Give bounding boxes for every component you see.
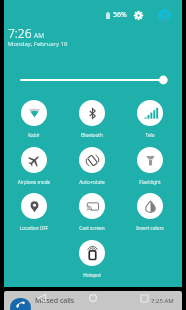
staticText: Telo (122, 132, 178, 138)
button[interactable]: Invert colors (122, 193, 178, 231)
staticText: Monday, February 16 (8, 40, 68, 48)
staticText: Airplane mode (6, 179, 62, 185)
staticText: 7:25 AM (151, 297, 174, 305)
button[interactable]: Home (85, 291, 101, 306)
button[interactable]: Kabir (6, 100, 62, 138)
button[interactable]: Location OFF (6, 193, 62, 231)
staticText: 56% (113, 10, 127, 20)
button[interactable]: Auto-rotate (64, 147, 120, 185)
button[interactable]: Flashlight (122, 147, 178, 185)
button[interactable]: Settings (133, 10, 144, 21)
button[interactable]: Back (34, 291, 50, 306)
staticText: 7:26 (8, 25, 32, 41)
staticText: AM (34, 31, 45, 40)
staticText: Cast screen (64, 225, 120, 231)
staticText: Hotspot (64, 272, 120, 278)
staticText: Location OFF (6, 225, 62, 231)
button[interactable]: Airplane mode (6, 147, 62, 185)
staticText: Missed calls (35, 296, 75, 306)
staticText: Auto-rotate (64, 179, 120, 185)
staticText: Invert colors (122, 225, 178, 231)
staticText: Bluetooth (64, 132, 120, 138)
button[interactable]: Telo (122, 100, 178, 138)
button[interactable]: Hotspot (64, 240, 120, 278)
staticText: Kabir (6, 132, 62, 138)
button[interactable]: Account (158, 9, 171, 22)
button[interactable]: Missed call (10, 298, 31, 310)
staticText: Flashlight (122, 179, 178, 185)
button[interactable]: Brightness (4, 72, 182, 88)
button[interactable]: Cast screen (64, 193, 120, 231)
button[interactable]: Bluetooth (64, 100, 120, 138)
button[interactable]: Recents (136, 291, 152, 306)
